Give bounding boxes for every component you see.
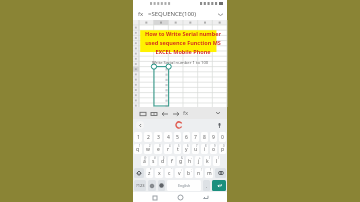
button[interactable]: ! (195, 168, 203, 178)
button[interactable]: Sheet (148, 108, 159, 119)
button[interactable]: Home (176, 193, 185, 202)
button[interactable]: 2 (144, 132, 152, 142)
staticText: $ (163, 156, 165, 160)
staticText: r (167, 146, 170, 153)
button[interactable]: Shift (134, 168, 144, 178)
button[interactable]: 3 (154, 132, 162, 142)
staticText: # (154, 156, 156, 160)
staticText: 5 (176, 134, 179, 141)
button[interactable]: # (150, 156, 157, 166)
staticText: @ (144, 156, 147, 160)
button[interactable]: 4 (164, 144, 172, 154)
staticText: =SEQUENCE(100) (148, 10, 197, 18)
staticText: - (191, 156, 192, 160)
button[interactable]: Expand toolbar (136, 121, 144, 129)
staticText: 2 (147, 134, 150, 141)
button[interactable]: + (195, 156, 202, 166)
staticText: 4 (169, 144, 171, 148)
button[interactable]: 8 (201, 132, 208, 142)
button[interactable]: - (186, 156, 193, 166)
button[interactable]: 9 (210, 144, 217, 154)
staticText: ; (191, 168, 192, 172)
staticText: 3 (159, 144, 161, 148)
button[interactable]: : (175, 168, 183, 178)
button[interactable]: . (203, 180, 210, 191)
button[interactable]: Back (201, 193, 210, 202)
button[interactable]: ?123 (134, 180, 146, 191)
button[interactable]: ( (204, 156, 211, 166)
staticText: h (188, 158, 192, 165)
button[interactable]: 5 (174, 144, 181, 154)
button[interactable]: ' (165, 168, 173, 178)
staticText: z (148, 170, 151, 177)
button[interactable]: Redo (170, 108, 181, 119)
button[interactable]: 1 (134, 132, 142, 142)
button[interactable]: Settings (148, 180, 156, 191)
button[interactable]: * (146, 168, 153, 178)
button[interactable]: ? (205, 168, 213, 178)
button[interactable]: Backspace (215, 168, 226, 178)
staticText: k (206, 158, 209, 165)
staticText: m (207, 170, 212, 177)
staticText: q (136, 146, 140, 153)
staticText: 0 (223, 144, 225, 148)
staticText: * (150, 168, 152, 172)
button[interactable]: Expand formula bar (216, 10, 224, 18)
staticText: 6 (185, 134, 188, 141)
staticText: y (185, 146, 188, 153)
button[interactable]: 9 (210, 132, 217, 142)
staticText: s (152, 158, 155, 165)
button[interactable]: More options (213, 108, 223, 118)
button[interactable]: _ (168, 156, 175, 166)
staticText: & (181, 156, 183, 160)
staticText: v (178, 170, 181, 177)
button[interactable]: & (177, 156, 184, 166)
staticText: t (177, 146, 179, 153)
staticText: " (160, 168, 162, 172)
staticText: i (204, 146, 206, 153)
button[interactable]: @ (141, 156, 148, 166)
staticText: fx (138, 10, 144, 18)
button[interactable]: 6 (183, 132, 190, 142)
button[interactable]: English (167, 180, 201, 191)
button[interactable]: ) (213, 156, 220, 166)
button[interactable]: Emoji (158, 180, 165, 191)
staticText: How to Write Serial number (145, 30, 221, 37)
button[interactable]: 1 (134, 144, 142, 154)
button[interactable]: 7 (192, 144, 199, 154)
staticText: 3 (157, 134, 160, 141)
staticText: + (199, 156, 201, 160)
button[interactable]: 5 (174, 132, 181, 142)
staticText: u (194, 146, 198, 153)
button[interactable]: 8 (201, 144, 208, 154)
button[interactable]: 0 (219, 132, 226, 142)
button[interactable]: 3 (154, 144, 162, 154)
button[interactable]: Function (181, 108, 191, 118)
button[interactable]: Function (136, 9, 145, 18)
staticText: 0 (221, 134, 224, 141)
staticText: ( (209, 156, 210, 160)
staticText: ?123 (136, 183, 145, 188)
button[interactable]: Voice input (215, 121, 224, 130)
button[interactable]: Gboard (174, 120, 184, 130)
button[interactable]: Keyboard (137, 108, 148, 119)
staticText: d (161, 158, 165, 165)
button[interactable]: Recents (150, 193, 159, 202)
button[interactable]: 4 (164, 132, 172, 142)
button[interactable]: 0 (219, 144, 226, 154)
staticText: ! (201, 168, 202, 172)
button[interactable]: Undo (159, 108, 170, 119)
staticText: 8 (203, 134, 206, 141)
button[interactable]: " (155, 168, 163, 178)
button[interactable]: 6 (183, 144, 190, 154)
button[interactable]: Enter (212, 180, 226, 191)
staticText: fx (183, 109, 189, 117)
staticText: c (168, 170, 171, 177)
staticText: ) (218, 156, 219, 160)
staticText: _ (172, 156, 174, 160)
staticText: used sequence Function MS (145, 39, 221, 46)
button[interactable]: $ (159, 156, 166, 166)
button[interactable]: 2 (144, 144, 152, 154)
button[interactable]: ; (185, 168, 193, 178)
button[interactable]: 7 (192, 132, 199, 142)
